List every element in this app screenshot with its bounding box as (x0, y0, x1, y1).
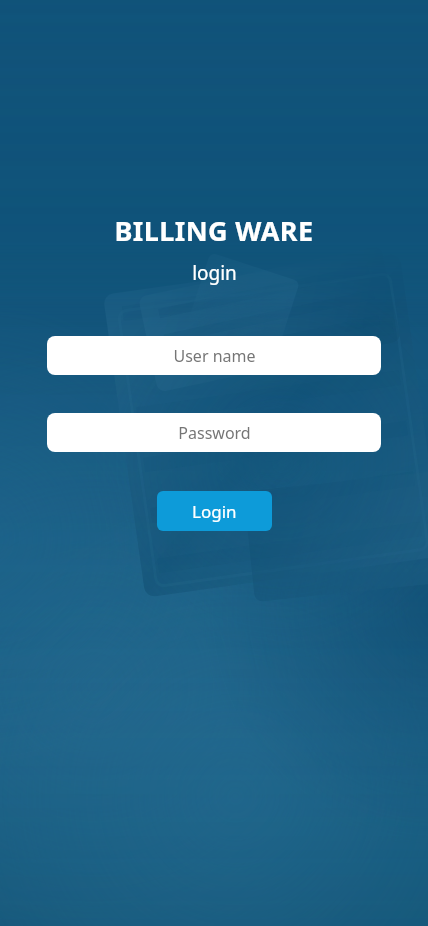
button[interactable]: Login (157, 491, 272, 531)
staticText: BILLING WARE (114, 212, 314, 249)
button[interactable]: Password (47, 413, 381, 452)
staticText: Password (178, 422, 251, 444)
staticText: User name (173, 345, 256, 367)
staticText: login (192, 260, 237, 286)
staticText: Login (192, 500, 237, 523)
button[interactable]: User name (47, 336, 381, 375)
